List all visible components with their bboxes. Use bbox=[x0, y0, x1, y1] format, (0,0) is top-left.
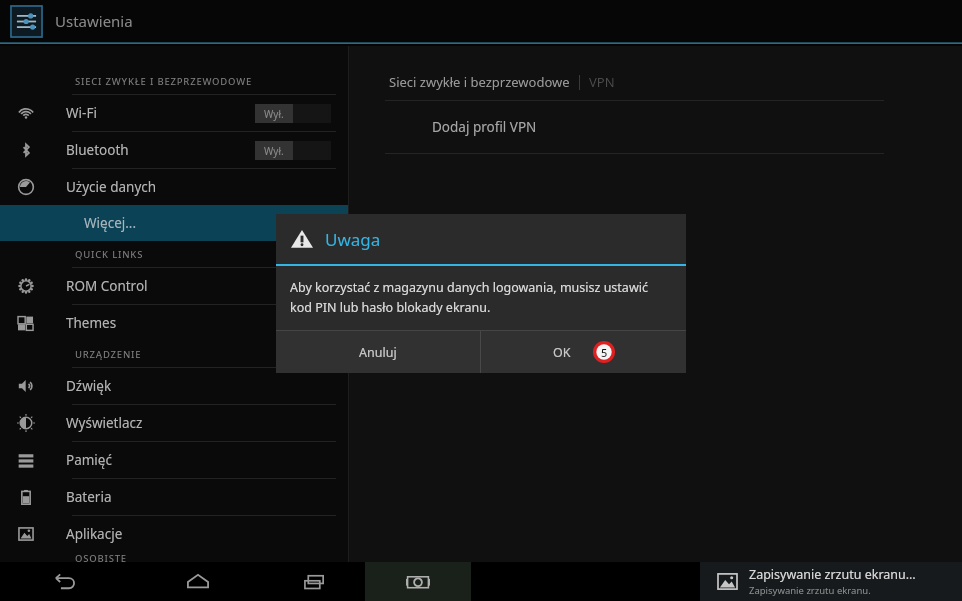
other: Settings app icon bbox=[10, 5, 43, 38]
button[interactable]: Aplikacje bbox=[0, 516, 348, 552]
staticText: Aplikacje bbox=[66, 525, 123, 543]
staticText: VPN bbox=[589, 73, 615, 91]
button[interactable]: Recent apps bbox=[265, 562, 365, 601]
button[interactable]: Wył. bbox=[255, 141, 331, 160]
button[interactable]: Wył. bbox=[255, 104, 331, 123]
staticText: Dodaj profil VPN bbox=[432, 118, 537, 136]
staticText: QUICK LINKS bbox=[75, 248, 144, 261]
staticText: Zapisywanie zrzutu ekranu… bbox=[749, 566, 916, 583]
staticText: OSOBISTE bbox=[75, 552, 127, 562]
staticText: Dźwięk bbox=[66, 377, 112, 395]
button[interactable]: Użycie danych bbox=[0, 169, 348, 205]
staticText: Aby korzystać z magazynu danych logowani… bbox=[290, 279, 648, 296]
staticText: Bateria bbox=[66, 488, 112, 506]
staticText: 5 bbox=[601, 345, 608, 360]
button[interactable]: Bluetooth bbox=[0, 132, 348, 168]
button[interactable]: Dźwięk bbox=[0, 368, 348, 404]
staticText: Ustawienia bbox=[55, 11, 133, 31]
staticText: Wył. bbox=[264, 107, 284, 121]
button[interactable]: Bateria bbox=[0, 479, 348, 515]
staticText: Pamięć bbox=[66, 451, 112, 469]
staticText: Więcej... bbox=[84, 214, 137, 232]
button[interactable]: Home bbox=[130, 562, 265, 601]
staticText: Wył. bbox=[264, 144, 284, 158]
staticText: Bluetooth bbox=[66, 141, 129, 159]
button[interactable]: Pamięć bbox=[0, 442, 348, 478]
staticText: kod PIN lub hasło blokady ekranu. bbox=[290, 299, 491, 316]
staticText: Wyświetlacz bbox=[66, 414, 143, 432]
button[interactable]: Settings app icon bbox=[10, 5, 43, 38]
staticText: OK bbox=[553, 344, 571, 361]
button[interactable]: Themes bbox=[0, 305, 348, 341]
staticText: Użycie danych bbox=[66, 178, 157, 196]
button[interactable]: Sieci zwykłe i bezprzewodowe bbox=[389, 73, 570, 91]
button[interactable]: OK bbox=[481, 331, 686, 373]
staticText: ROM Control bbox=[66, 277, 148, 295]
staticText: Zapisywanie zrzutu ekranu. bbox=[749, 584, 871, 597]
button[interactable]: Więcej... bbox=[0, 205, 348, 241]
button[interactable]: ROM Control bbox=[0, 268, 348, 304]
button[interactable]: Wyświetlacz bbox=[0, 405, 348, 441]
button[interactable]: Zapisywanie zrzutu ekranu… bbox=[700, 562, 962, 601]
staticText: URZĄDZENIE bbox=[75, 348, 142, 361]
button[interactable]: Screenshot bbox=[365, 562, 471, 601]
staticText: Wi-Fi bbox=[66, 104, 97, 122]
staticText: Themes bbox=[66, 314, 117, 332]
button[interactable]: Wi-Fi bbox=[0, 95, 348, 131]
button[interactable]: Back bbox=[0, 562, 130, 601]
staticText: Anuluj bbox=[359, 344, 397, 361]
button[interactable]: Dodaj profil VPN bbox=[349, 101, 962, 153]
staticText: Uwaga bbox=[325, 228, 381, 251]
button[interactable]: Anuluj bbox=[276, 331, 480, 373]
staticText: SIECI ZWYKŁE I BEZPRZEWODOWE bbox=[75, 75, 253, 88]
